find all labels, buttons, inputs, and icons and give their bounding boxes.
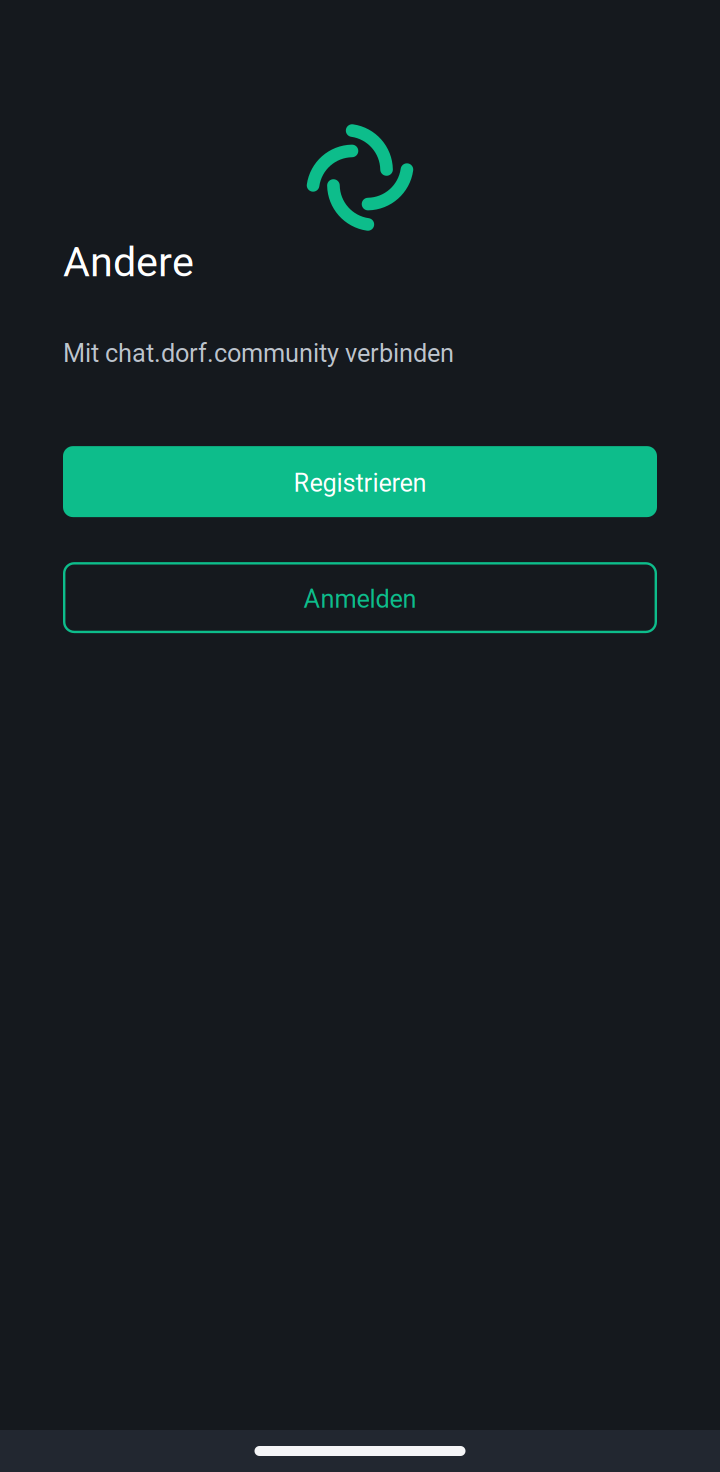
staticText: Anmelden: [303, 584, 416, 614]
button[interactable]: Anmelden: [63, 562, 657, 633]
staticText: Registrieren: [293, 468, 426, 498]
staticText: Mit chat.dorf.community verbinden: [63, 338, 454, 368]
staticText: Andere: [63, 238, 194, 286]
button[interactable]: Registrieren: [63, 446, 657, 517]
